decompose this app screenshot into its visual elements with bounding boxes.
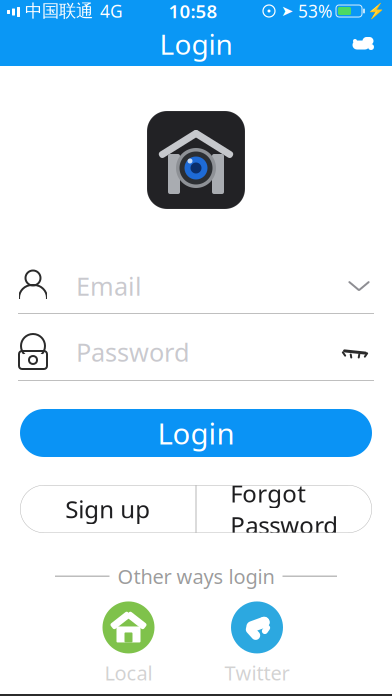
staticText: 10:58	[168, 0, 217, 23]
staticText: 中国联通	[25, 0, 93, 22]
staticText: ➤	[281, 3, 293, 19]
button[interactable]: Forgot Password	[196, 485, 372, 533]
button[interactable]: Show saved accounts	[336, 269, 382, 303]
staticText: Login	[159, 25, 232, 63]
staticText: 4G	[100, 0, 123, 22]
button[interactable]: Sign up	[20, 485, 195, 533]
staticText: Email	[76, 269, 142, 303]
staticText: Sign up	[65, 493, 150, 525]
staticText: Password	[76, 335, 190, 369]
staticText: ⚡	[367, 3, 385, 19]
button[interactable]: Region	[340, 27, 386, 61]
button[interactable]: Local	[90, 601, 166, 686]
staticText: 53%	[298, 0, 332, 22]
button[interactable]: Login	[20, 409, 372, 457]
staticText: Other ways login	[117, 563, 274, 589]
staticText: Local	[104, 659, 152, 686]
staticText: Twitter	[224, 659, 289, 686]
staticText: Login	[157, 413, 234, 452]
button[interactable]: Twitter	[212, 601, 301, 686]
button[interactable]: Show password	[328, 332, 382, 372]
staticText: Forgot Password	[230, 477, 338, 541]
